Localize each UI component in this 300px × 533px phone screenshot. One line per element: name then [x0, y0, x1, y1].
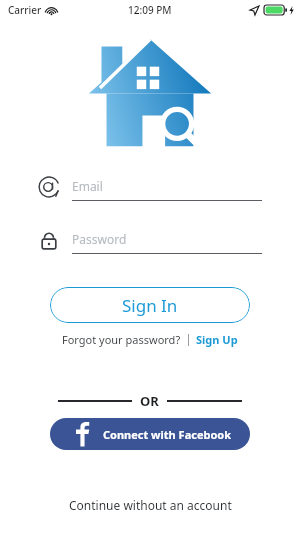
staticText: OR — [140, 392, 159, 410]
staticText: Email — [72, 178, 103, 194]
staticText: Connect with Facebook — [103, 427, 231, 442]
button[interactable]: Continue without an account — [63, 491, 238, 519]
staticText: Sign Up — [196, 332, 238, 347]
button[interactable]: Sign Up — [196, 332, 238, 347]
button[interactable]: Password — [38, 223, 262, 257]
other: Password — [38, 229, 60, 251]
staticText: Continue without an account — [69, 497, 232, 513]
button[interactable]: Sign In — [50, 287, 250, 323]
staticText: Forgot your password? — [62, 332, 181, 347]
staticText: Sign In — [122, 294, 178, 317]
button[interactable]: Email — [38, 170, 262, 204]
other: Email — [38, 176, 60, 198]
staticText: Password — [72, 231, 127, 247]
button[interactable]: Forgot your password? — [62, 332, 181, 347]
staticText: 12:09 PM — [128, 3, 172, 17]
staticText: Carrier — [8, 3, 42, 17]
button[interactable]: Connect with Facebook — [50, 418, 250, 450]
